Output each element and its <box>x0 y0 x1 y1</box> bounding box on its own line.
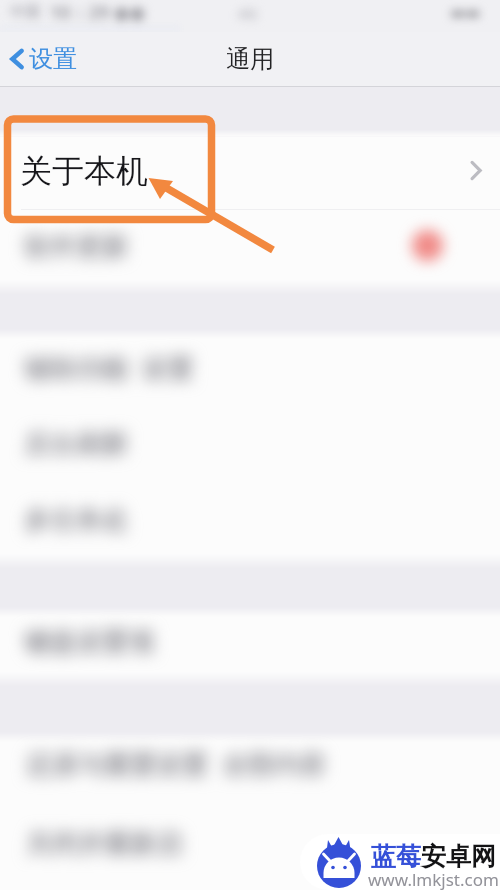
other: Site logo <box>314 834 364 884</box>
staticText: 蓝莓 <box>371 841 421 872</box>
other: Open About <box>469 159 483 182</box>
staticText: 通用 <box>226 44 274 74</box>
button[interactable]: 软件更新 <box>0 209 500 285</box>
staticText: 安卓网 <box>421 841 496 872</box>
button[interactable]: 还原与重置设置 全部内容 <box>0 726 500 802</box>
staticText: 设置 <box>29 44 77 74</box>
staticText: 还原与重置设置 全部内容 <box>26 746 326 782</box>
button[interactable]: 设置 <box>0 38 91 80</box>
staticText: 多任务处 <box>24 504 128 537</box>
staticText: 后台刷新 <box>24 428 128 461</box>
staticText: 辅助功能 设置 <box>24 350 194 386</box>
staticText: 关闭并重新启 <box>26 828 182 861</box>
staticText: 中国 <box>10 3 40 22</box>
button[interactable]: 关闭并重新启 <box>0 806 500 882</box>
button[interactable]: 多任务处 <box>0 482 500 558</box>
staticText: 10：29 ●● <box>50 0 146 25</box>
staticText: 4G <box>238 3 258 23</box>
button[interactable]: 键盘设置项 <box>0 604 500 680</box>
staticText: ▬▬ <box>450 3 481 22</box>
button[interactable]: 关于本机 <box>0 132 500 209</box>
staticText: 键盘设置项 <box>24 626 154 659</box>
button[interactable]: 后台刷新 <box>0 406 500 482</box>
staticText: 关于本机 <box>20 151 148 191</box>
staticText: 软件更新 <box>24 231 128 264</box>
staticText: www.lmkjst.com <box>368 868 499 890</box>
button[interactable]: 辅助功能 设置 <box>0 330 500 406</box>
